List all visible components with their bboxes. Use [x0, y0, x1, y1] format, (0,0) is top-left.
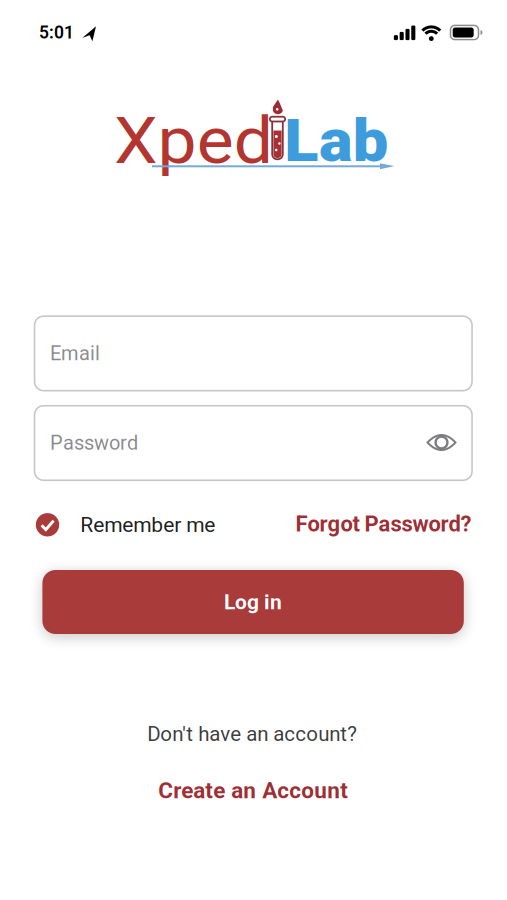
button[interactable]: Log in	[42, 570, 464, 634]
button[interactable]: Forgot Password?	[295, 511, 471, 537]
staticText: 5:01	[39, 22, 74, 43]
staticText: Password	[50, 431, 138, 455]
button[interactable]: Remember me	[36, 512, 215, 537]
staticText: Forgot Password?	[295, 511, 471, 537]
staticText: Xped	[120, 103, 266, 178]
button[interactable]: Show password	[419, 420, 463, 464]
staticText: Log in	[224, 590, 282, 614]
button[interactable]: Password	[35, 406, 472, 480]
staticText: Remember me	[80, 512, 215, 537]
staticText: Create an Account	[158, 777, 348, 804]
staticText: Email	[50, 342, 100, 365]
button[interactable]: Create an Account	[158, 777, 348, 804]
button[interactable]: Email	[35, 316, 472, 391]
staticText: Don't have an account?	[147, 722, 357, 746]
staticText: Lab	[287, 105, 386, 176]
